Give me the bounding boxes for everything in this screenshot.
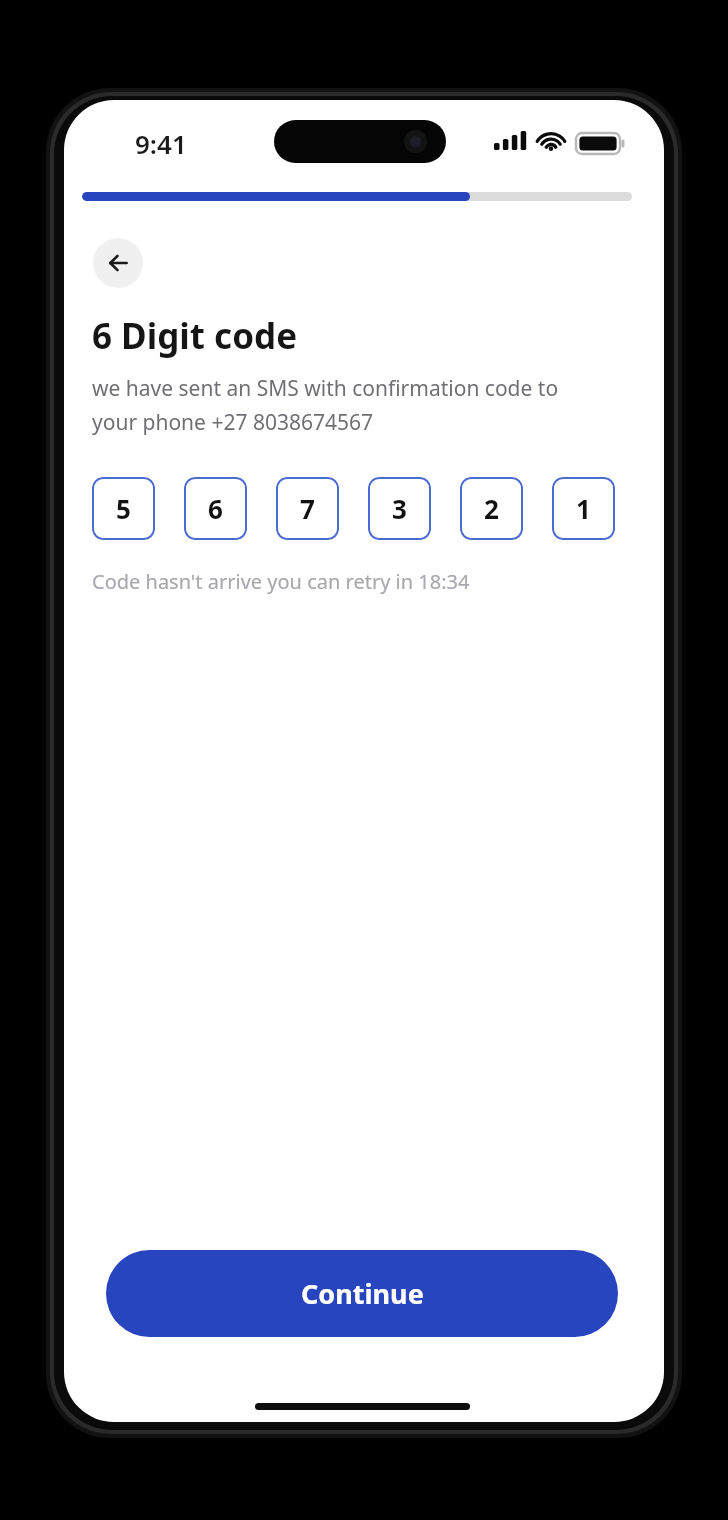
staticText: 3 xyxy=(392,491,407,526)
staticText: 1 xyxy=(576,491,591,526)
staticText: 9:41 xyxy=(135,126,187,161)
staticText: 2 xyxy=(484,491,499,526)
staticText: 6 Digit code xyxy=(92,312,298,360)
button[interactable]: 5 xyxy=(92,477,155,540)
staticText: Continue xyxy=(301,1275,424,1312)
staticText: 6 xyxy=(208,491,223,526)
button[interactable]: 2 xyxy=(460,477,523,540)
staticText: 7 xyxy=(300,491,315,526)
button[interactable]: Code hasn't arrive you can retry in 18:3… xyxy=(92,568,470,595)
staticText: Code hasn't arrive you can retry in 18:3… xyxy=(92,568,470,595)
button[interactable]: 6 xyxy=(184,477,247,540)
button[interactable]: 7 xyxy=(276,477,339,540)
staticText: we have sent an SMS with confirmation co… xyxy=(92,374,602,436)
button[interactable]: 3 xyxy=(368,477,431,540)
button[interactable]: Continue xyxy=(106,1250,618,1337)
button[interactable]: 1 xyxy=(552,477,615,540)
button[interactable]: Back xyxy=(93,238,143,288)
staticText: 5 xyxy=(116,491,131,526)
